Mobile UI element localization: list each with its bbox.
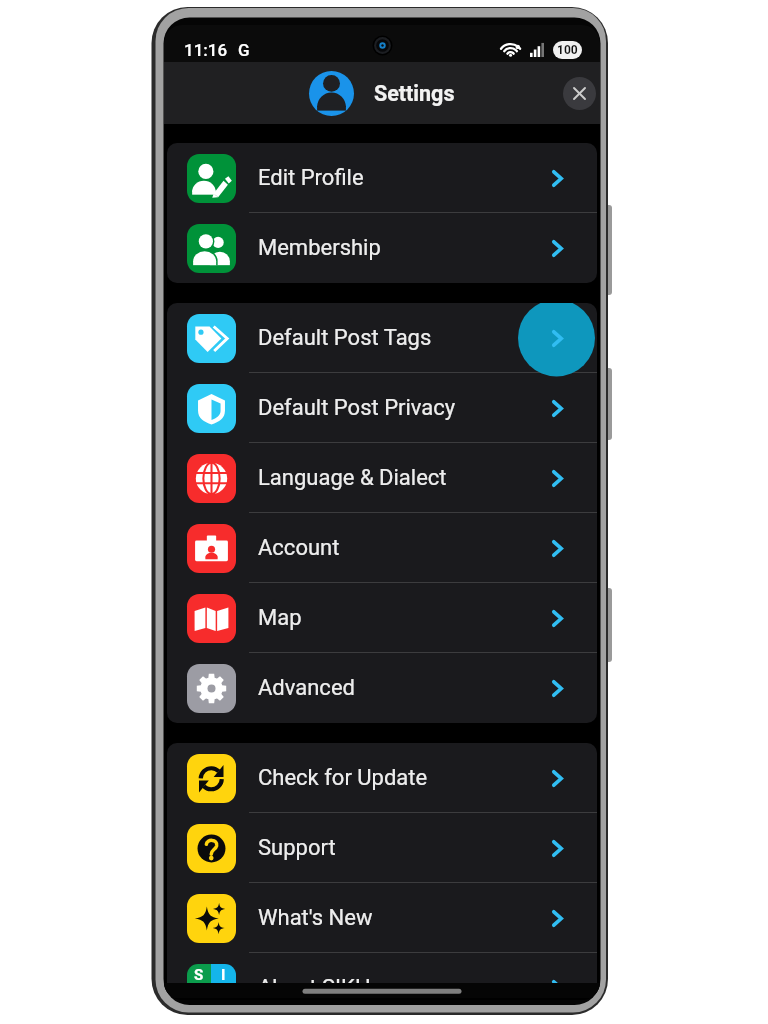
- staticText: I: [221, 966, 226, 983]
- button[interactable]: Map: [167, 583, 597, 653]
- staticText: Language & Dialect: [258, 465, 447, 491]
- button[interactable]: Language & Dialect: [167, 443, 597, 513]
- staticText: Support: [258, 835, 336, 861]
- staticText: What's New: [258, 905, 373, 931]
- staticText: Account: [258, 535, 340, 561]
- button[interactable]: Account: [167, 513, 597, 583]
- staticText: 11:16: [184, 40, 228, 60]
- button[interactable]: Close settings: [563, 77, 596, 110]
- staticText: About SIKH: [258, 975, 371, 983]
- button[interactable]: Edit Profile: [167, 143, 597, 213]
- button[interactable]: Support: [167, 813, 597, 883]
- staticText: Default Post Privacy: [258, 395, 456, 421]
- staticText: Edit Profile: [258, 165, 364, 191]
- staticText: Default Post Tags: [258, 325, 432, 351]
- staticText: Check for Update: [258, 765, 428, 791]
- staticText: S: [194, 966, 204, 983]
- button[interactable]: Check for Update: [167, 743, 597, 813]
- staticText: Membership: [258, 235, 381, 261]
- staticText: Advanced: [258, 675, 355, 701]
- staticText: Settings: [374, 81, 455, 106]
- button[interactable]: What's New: [167, 883, 597, 953]
- button[interactable]: Advanced: [167, 653, 597, 723]
- button[interactable]: S: [167, 953, 597, 983]
- staticText: 100: [557, 43, 578, 57]
- button[interactable]: Default Post Tags: [167, 303, 597, 373]
- staticText: Map: [258, 605, 302, 631]
- staticText: G: [238, 40, 250, 60]
- button[interactable]: Default Post Privacy: [167, 373, 597, 443]
- button[interactable]: Membership: [167, 213, 597, 283]
